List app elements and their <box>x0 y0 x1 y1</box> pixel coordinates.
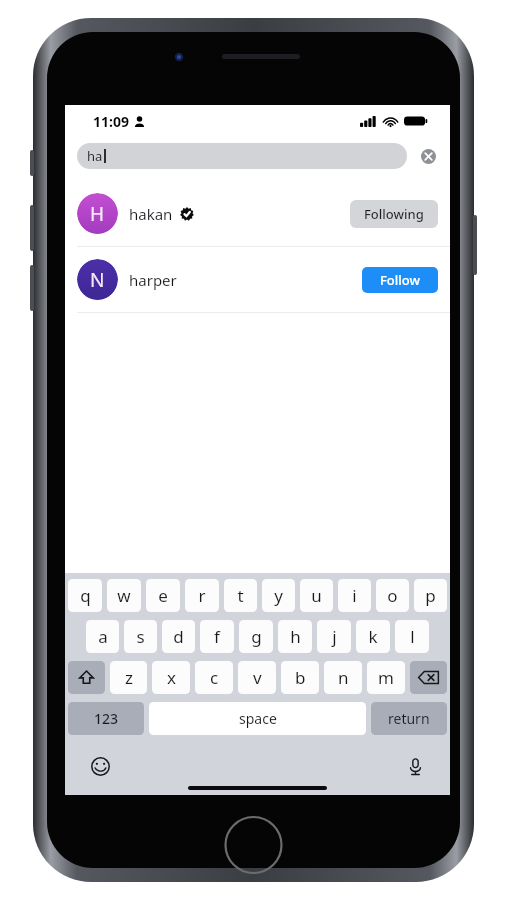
button[interactable]: Backspace <box>410 661 447 694</box>
button[interactable]: Clear search <box>416 144 440 168</box>
button[interactable]: Dictate <box>402 753 428 779</box>
staticText: m <box>378 666 394 689</box>
staticText: z <box>125 666 133 689</box>
staticText: e <box>158 584 168 607</box>
button[interactable]: z <box>110 661 147 694</box>
staticText: s <box>136 625 145 648</box>
staticText: 123 <box>94 709 119 728</box>
staticText: o <box>387 584 398 607</box>
staticText: p <box>425 584 436 607</box>
button[interactable]: e <box>146 579 180 612</box>
staticText: d <box>173 625 184 648</box>
button[interactable]: n <box>324 661 362 694</box>
staticText: j <box>332 625 337 648</box>
button[interactable]: Follow <box>362 267 438 293</box>
button[interactable]: space <box>149 702 366 735</box>
staticText: i <box>352 584 357 607</box>
button[interactable]: a <box>86 620 119 653</box>
staticText: y <box>274 584 283 607</box>
staticText: c <box>210 666 219 689</box>
button[interactable]: u <box>300 579 333 612</box>
button[interactable]: N <box>65 247 450 312</box>
staticText: hakan <box>129 204 173 224</box>
button[interactable]: t <box>224 579 257 612</box>
button[interactable]: k <box>356 620 390 653</box>
button[interactable]: w <box>107 579 141 612</box>
staticText: r <box>198 584 206 607</box>
staticText: h <box>290 625 301 648</box>
staticText: harper <box>129 270 177 290</box>
staticText: w <box>117 584 131 607</box>
staticText: q <box>80 584 91 607</box>
button[interactable]: x <box>152 661 190 694</box>
staticText: a <box>98 625 108 648</box>
button[interactable]: Shift <box>68 661 105 694</box>
staticText: k <box>368 625 378 648</box>
button[interactable]: o <box>376 579 409 612</box>
staticText: t <box>237 584 244 607</box>
button[interactable]: y <box>262 579 295 612</box>
staticText: Follow <box>380 271 421 289</box>
button[interactable]: return <box>371 702 447 735</box>
staticText: H <box>90 201 105 227</box>
button[interactable]: p <box>414 579 447 612</box>
staticText: ha <box>87 147 103 165</box>
staticText: return <box>388 709 430 728</box>
button[interactable]: H <box>65 181 450 246</box>
staticText: b <box>295 666 306 689</box>
button[interactable]: q <box>68 579 102 612</box>
button[interactable]: j <box>317 620 351 653</box>
staticText: x <box>167 666 176 689</box>
staticText: space <box>239 709 277 728</box>
button[interactable]: c <box>195 661 233 694</box>
staticText: v <box>253 666 262 689</box>
button[interactable]: 123 <box>68 702 144 735</box>
button[interactable]: l <box>395 620 429 653</box>
staticText: n <box>338 666 349 689</box>
button[interactable]: d <box>162 620 195 653</box>
staticText: N <box>90 267 105 293</box>
button[interactable]: Emoji <box>87 753 113 779</box>
button[interactable]: ha <box>77 143 407 169</box>
button[interactable]: g <box>239 620 273 653</box>
staticText: 11:09 <box>93 112 129 131</box>
button[interactable]: h <box>278 620 312 653</box>
button[interactable]: b <box>281 661 319 694</box>
button[interactable]: r <box>185 579 219 612</box>
staticText: g <box>251 625 262 648</box>
button[interactable]: i <box>338 579 371 612</box>
staticText: u <box>311 584 322 607</box>
staticText: l <box>410 625 415 648</box>
staticText: f <box>214 625 220 648</box>
button[interactable]: v <box>238 661 276 694</box>
staticText: Following <box>364 205 424 223</box>
button[interactable]: m <box>367 661 405 694</box>
button[interactable]: f <box>200 620 234 653</box>
button[interactable]: s <box>124 620 157 653</box>
button[interactable]: Following <box>350 200 438 228</box>
